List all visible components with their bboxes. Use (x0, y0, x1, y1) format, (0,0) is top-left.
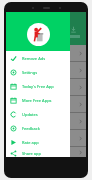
button[interactable] (6, 79, 86, 95)
button[interactable] (6, 45, 86, 61)
staticText: More Free Apps (22, 98, 52, 103)
button[interactable]: Rate app (6, 135, 70, 149)
button[interactable] (6, 147, 86, 157)
button[interactable]: Updates (6, 107, 70, 121)
staticText: Settings (22, 70, 38, 75)
button[interactable] (6, 96, 86, 112)
staticText: Share app (22, 151, 41, 156)
staticText: Remove Ads (22, 56, 46, 61)
button[interactable]: More Free Apps (6, 93, 70, 107)
button[interactable]: Today's Free App (6, 79, 70, 93)
button[interactable]: Settings (6, 65, 70, 79)
button[interactable] (6, 113, 86, 129)
button[interactable] (6, 130, 86, 146)
button[interactable]: Remove Ads (6, 51, 70, 65)
button[interactable]: Feedback (6, 121, 70, 135)
staticText: Today's Free App (22, 84, 54, 89)
button[interactable] (6, 62, 86, 78)
button[interactable]: Share app (6, 149, 70, 157)
staticText: Updates (22, 112, 38, 117)
staticText: Feedback (22, 126, 40, 131)
staticText: Rate app (22, 140, 39, 145)
